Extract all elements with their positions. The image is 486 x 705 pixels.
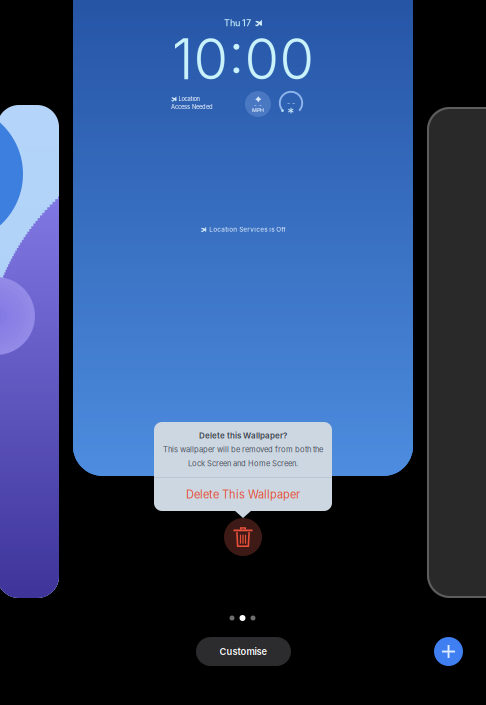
button[interactable]: Delete This Wallpaper bbox=[154, 478, 332, 511]
staticText: Lock Screen and Home Screen. bbox=[188, 459, 298, 468]
staticText: - - bbox=[287, 99, 295, 107]
staticText: Delete This Wallpaper bbox=[186, 488, 300, 501]
button[interactable]: Delete wallpaper bbox=[224, 518, 262, 556]
staticText: 10:00 bbox=[171, 25, 314, 93]
button[interactable]: Add wallpaper bbox=[434, 637, 463, 666]
staticText: Thu 17 bbox=[224, 18, 251, 28]
staticText: - - bbox=[254, 102, 262, 109]
button[interactable]: Customise bbox=[196, 637, 291, 666]
staticText: Location bbox=[179, 95, 200, 102]
staticText: Access Needed bbox=[171, 103, 213, 110]
staticText: Delete this Wallpaper? bbox=[199, 431, 287, 440]
staticText: This wallpaper will be removed from both… bbox=[163, 445, 323, 454]
staticText: Customise bbox=[219, 646, 267, 657]
staticText: MPH bbox=[252, 107, 264, 113]
staticText: Location Services is Off bbox=[209, 226, 285, 233]
